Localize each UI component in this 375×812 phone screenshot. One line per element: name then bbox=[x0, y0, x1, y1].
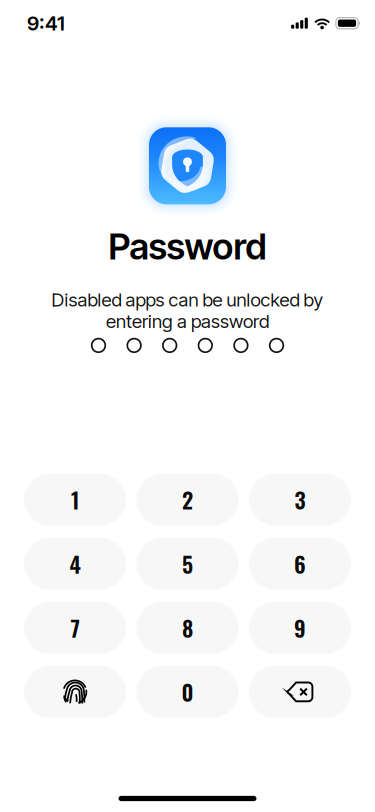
staticText: 7 bbox=[70, 611, 79, 644]
button[interactable]: 3 bbox=[249, 474, 351, 526]
button[interactable]: Unlock with Touch ID bbox=[24, 666, 126, 718]
staticText: 3 bbox=[294, 483, 305, 516]
button[interactable]: 7 bbox=[24, 602, 126, 654]
button[interactable]: 9 bbox=[249, 602, 351, 654]
button[interactable]: 2 bbox=[136, 474, 238, 526]
staticText: 2 bbox=[182, 483, 193, 516]
staticText: 9 bbox=[294, 611, 306, 644]
button[interactable]: 6 bbox=[249, 538, 351, 590]
button[interactable]: 1 bbox=[24, 474, 126, 526]
button[interactable]: 5 bbox=[136, 538, 238, 590]
staticText: 0 bbox=[181, 676, 193, 708]
staticText: 6 bbox=[294, 547, 306, 580]
button[interactable]: 0 bbox=[136, 666, 238, 718]
button[interactable]: 8 bbox=[136, 602, 238, 654]
button[interactable]: Delete bbox=[249, 666, 351, 718]
staticText: 9:41 bbox=[27, 11, 65, 35]
staticText: Disabled apps can be unlocked by bbox=[51, 288, 323, 311]
staticText: 5 bbox=[182, 547, 193, 580]
button[interactable]: 4 bbox=[24, 538, 126, 590]
staticText: 1 bbox=[71, 483, 79, 516]
staticText: entering a password bbox=[106, 310, 269, 333]
staticText: 8 bbox=[182, 611, 193, 644]
staticText: 4 bbox=[69, 547, 80, 580]
staticText: Password bbox=[108, 225, 266, 268]
